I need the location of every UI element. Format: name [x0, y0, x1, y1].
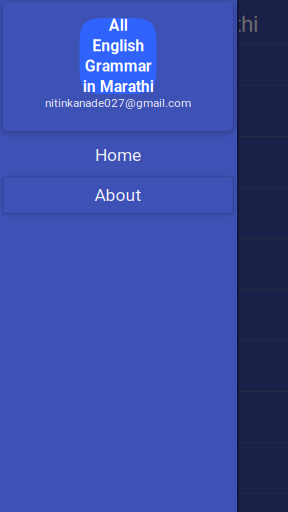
- button[interactable]: Topic 6: [0, 290, 288, 340]
- staticText: nitinkanade027@gmail.com: [45, 96, 191, 110]
- staticText: Home: [95, 145, 141, 165]
- button[interactable]: Topic 8: [0, 392, 288, 442]
- button[interactable]: Topic 3: [0, 137, 288, 187]
- button[interactable]: Topic 5: [0, 239, 288, 289]
- staticText: About: [94, 185, 141, 205]
- button[interactable]: Topic 7: [0, 341, 288, 391]
- staticText: All English Grammar in Marathi: [82, 16, 153, 96]
- button[interactable]: All English Grammar in Marathi: [3, 2, 233, 131]
- button[interactable]: Topic 4: [0, 188, 288, 238]
- button[interactable]: Topic 9: [0, 443, 288, 493]
- staticText: thi: [234, 11, 259, 37]
- button[interactable]: Topic 2: [0, 86, 288, 136]
- button[interactable]: Topic 1: [0, 45, 288, 85]
- button[interactable]: Home: [3, 133, 233, 177]
- button[interactable]: About: [3, 177, 233, 213]
